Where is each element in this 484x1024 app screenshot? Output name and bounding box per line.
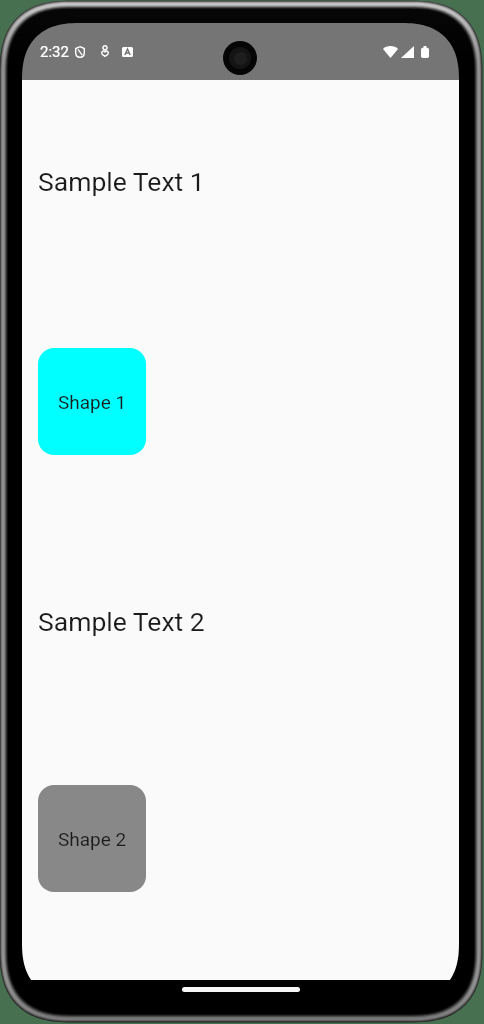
staticText: Shape 1 (58, 391, 127, 413)
other: Mobile signal (401, 46, 414, 58)
button[interactable]: Shape 1 (38, 348, 146, 455)
staticText: Sample Text 1 (38, 166, 205, 197)
other: Battery (421, 46, 429, 58)
button[interactable]: Shape 2 (38, 785, 146, 892)
other: Personal safety (101, 46, 109, 57)
other: Security status (75, 46, 85, 58)
other: Accessibility (122, 47, 133, 57)
other: Wi-Fi (383, 46, 398, 58)
staticText: Sample Text 2 (38, 606, 205, 637)
staticText: Shape 2 (58, 828, 127, 850)
staticText: 2:32 (40, 43, 69, 61)
